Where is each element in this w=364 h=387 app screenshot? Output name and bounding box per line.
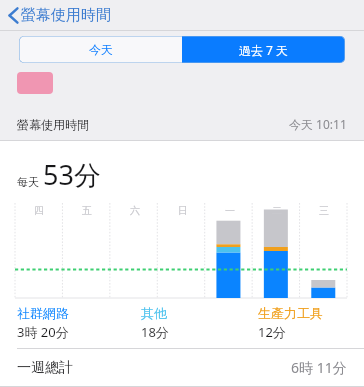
- staticText: 6時 11分: [291, 358, 347, 377]
- staticText: 螢幕使用時間: [21, 6, 111, 25]
- button[interactable]: 過去 7 天: [182, 36, 345, 63]
- button[interactable]: 社群網路: [17, 305, 141, 341]
- staticText: 今天: [89, 42, 113, 57]
- button[interactable]: 其他: [141, 305, 258, 341]
- button[interactable]: 生產力工具: [258, 305, 350, 341]
- staticText: 53分: [43, 156, 101, 193]
- staticText: 螢幕使用時間: [17, 117, 89, 132]
- staticText: 過去 7 天: [239, 42, 289, 58]
- staticText: 3時 20分: [17, 323, 69, 341]
- staticText: 社群網路: [17, 305, 69, 321]
- staticText: 其他: [141, 305, 167, 321]
- staticText: 日: [178, 204, 188, 217]
- staticText: 每天: [17, 175, 39, 189]
- staticText: 一: [225, 204, 235, 217]
- staticText: 12分: [258, 323, 286, 341]
- staticText: 三: [319, 204, 329, 217]
- staticText: 二: [272, 204, 282, 217]
- staticText: 生產力工具: [258, 305, 323, 321]
- button[interactable]: 今天: [19, 36, 182, 63]
- staticText: 今天 10:11: [289, 116, 347, 132]
- button[interactable]: 返回: [5, 3, 114, 28]
- staticText: 六: [130, 204, 140, 217]
- staticText: 五: [82, 204, 92, 217]
- staticText: 18分: [141, 323, 169, 341]
- button[interactable]: 一週總計: [0, 349, 364, 386]
- staticText: 四: [34, 204, 44, 217]
- staticText: 一週總計: [17, 359, 73, 377]
